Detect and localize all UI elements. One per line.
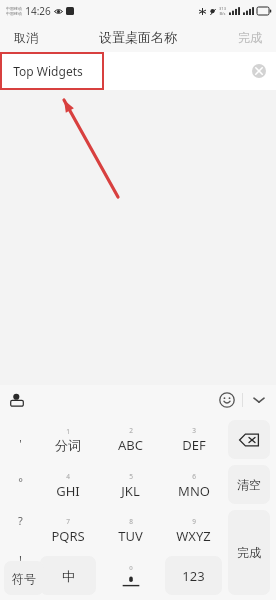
- staticText: °: [18, 474, 23, 489]
- button[interactable]: 完成: [224, 24, 276, 51]
- staticText: 8: [129, 517, 133, 526]
- button[interactable]: 2: [99, 417, 162, 463]
- staticText: 4: [66, 472, 70, 481]
- button[interactable]: 7: [37, 508, 99, 553]
- button[interactable]: Voice input: [99, 553, 162, 598]
- button[interactable]: Emoji: [219, 392, 235, 408]
- staticText: 中国移动: [6, 11, 22, 16]
- staticText: 0: [129, 564, 133, 572]
- button[interactable]: 3: [162, 417, 225, 463]
- staticText: 符号: [12, 571, 36, 586]
- staticText: 取消: [14, 30, 38, 45]
- staticText: 9: [192, 517, 196, 526]
- staticText: 5: [129, 472, 133, 481]
- staticText: !: [19, 552, 22, 567]
- staticText: 设置桌面名称: [99, 29, 177, 45]
- staticText: TUV: [118, 527, 143, 545]
- staticText: 3: [192, 426, 196, 435]
- staticText: GHI: [56, 482, 80, 500]
- staticText: MNO: [178, 482, 210, 500]
- staticText: 2: [129, 426, 133, 435]
- staticText: WXYZ: [176, 527, 211, 545]
- staticText: 123: [182, 567, 205, 585]
- staticText: 中: [62, 568, 75, 584]
- staticText: 6: [192, 472, 196, 481]
- button[interactable]: Top Widgets: [13, 63, 83, 79]
- button[interactable]: !: [5, 546, 35, 572]
- button[interactable]: Clear text: [252, 64, 266, 78]
- button[interactable]: 6: [162, 463, 225, 508]
- button[interactable]: 取消: [0, 24, 52, 51]
- button[interactable]: 4: [37, 463, 99, 508]
- button[interactable]: Hide keyboard: [250, 391, 268, 409]
- button[interactable]: ': [5, 430, 35, 456]
- staticText: 1: [66, 427, 70, 436]
- staticText: 14:26: [25, 4, 51, 18]
- button[interactable]: 中: [40, 556, 96, 595]
- staticText: 清空: [237, 477, 261, 492]
- button[interactable]: 符号: [4, 561, 44, 595]
- staticText: 7: [66, 517, 70, 526]
- staticText: 中国移动: [6, 6, 22, 11]
- button[interactable]: 清空: [228, 465, 270, 504]
- button[interactable]: ?: [5, 507, 35, 533]
- staticText: 313: [219, 6, 226, 11]
- staticText: PQRS: [51, 527, 85, 545]
- staticText: 分词: [55, 437, 81, 453]
- staticText: DEF: [182, 436, 206, 454]
- button[interactable]: °: [5, 468, 35, 494]
- staticText: ': [19, 436, 22, 451]
- button[interactable]: 123: [165, 556, 222, 595]
- button[interactable]: 1: [37, 417, 99, 463]
- staticText: Top Widgets: [13, 63, 83, 79]
- staticText: ABC: [118, 436, 143, 454]
- button[interactable]: 8: [99, 508, 162, 553]
- staticText: JKL: [121, 482, 140, 500]
- button[interactable]: Backspace: [228, 420, 270, 459]
- staticText: B/s: [219, 11, 226, 16]
- button[interactable]: 5: [99, 463, 162, 508]
- staticText: ?: [18, 513, 23, 528]
- button[interactable]: 完成: [228, 510, 270, 595]
- button[interactable]: 9: [162, 508, 225, 553]
- button[interactable]: Input method settings: [10, 393, 24, 407]
- staticText: 完成: [238, 30, 262, 45]
- staticText: 完成: [237, 545, 261, 560]
